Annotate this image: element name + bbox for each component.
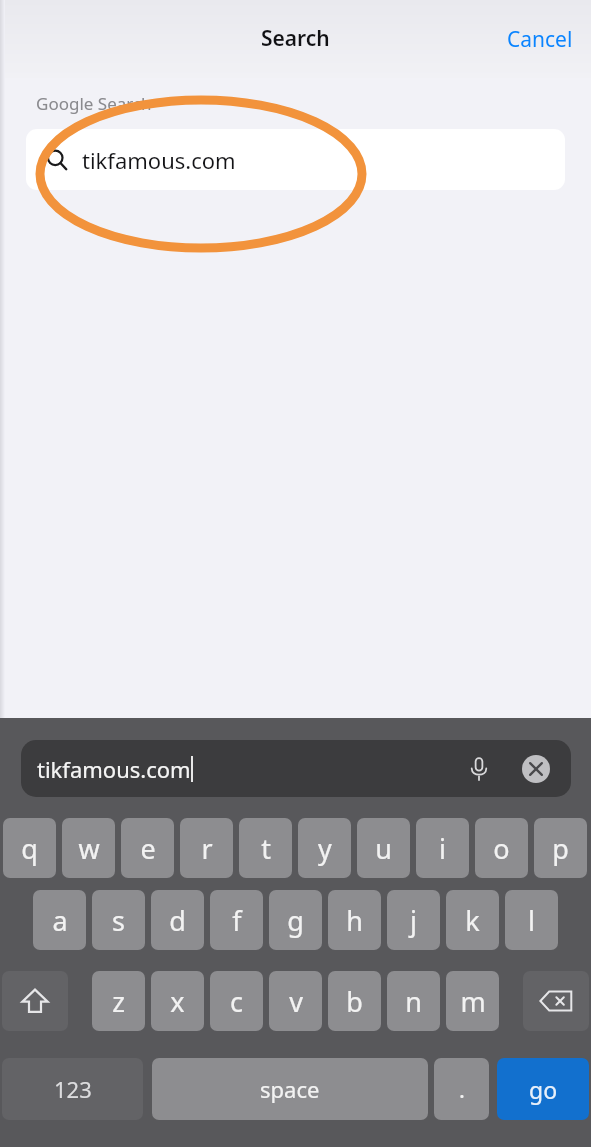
staticText: d [169, 902, 186, 939]
staticText: 123 [54, 1074, 92, 1104]
button[interactable]: Clear text [519, 752, 553, 786]
staticText: v [289, 983, 303, 1020]
staticText: n [405, 983, 422, 1020]
button[interactable]: Shift [2, 971, 68, 1031]
staticText: j [410, 902, 417, 939]
staticText: tikfamous.com [37, 754, 191, 784]
staticText: Search [261, 24, 330, 53]
button[interactable]: go [497, 1058, 589, 1120]
staticText: y [318, 830, 332, 867]
button[interactable]: m [446, 971, 499, 1031]
button[interactable]: o [475, 818, 528, 878]
staticText: l [528, 902, 535, 939]
staticText: w [78, 830, 100, 867]
staticText: z [112, 983, 125, 1020]
staticText: u [375, 830, 392, 867]
button[interactable]: l [505, 890, 558, 950]
staticText: g [287, 902, 304, 939]
button[interactable]: tikfamous.com [26, 129, 565, 190]
button[interactable]: d [151, 890, 204, 950]
button[interactable]: q [3, 818, 56, 878]
staticText: m [460, 983, 486, 1020]
staticText: h [346, 902, 363, 939]
button[interactable]: y [298, 818, 351, 878]
staticText: tikfamous.com [82, 145, 236, 175]
staticText: s [112, 902, 125, 939]
button[interactable]: v [269, 971, 322, 1031]
staticText: r [201, 830, 213, 867]
staticText: t [261, 830, 271, 867]
button[interactable]: i [416, 818, 469, 878]
button[interactable]: h [328, 890, 381, 950]
button[interactable]: k [446, 890, 499, 950]
staticText: k [465, 902, 480, 939]
button[interactable]: e [121, 818, 174, 878]
button[interactable]: w [62, 818, 115, 878]
staticText: Cancel [507, 25, 573, 54]
staticText: x [170, 983, 185, 1020]
button[interactable]: g [269, 890, 322, 950]
staticText: Google Search [36, 92, 152, 115]
button[interactable]: s [92, 890, 145, 950]
staticText: go [529, 1074, 558, 1105]
button[interactable]: Cancel [489, 13, 591, 66]
staticText: p [552, 830, 569, 867]
button[interactable]: n [387, 971, 440, 1031]
button[interactable]: j [387, 890, 440, 950]
button[interactable]: Backspace [523, 971, 589, 1031]
staticText: space [260, 1074, 320, 1104]
button[interactable]: f [210, 890, 263, 950]
button[interactable]: b [328, 971, 381, 1031]
staticText: e [140, 830, 156, 867]
button[interactable]: space [152, 1058, 428, 1120]
button[interactable]: t [239, 818, 292, 878]
button[interactable]: c [210, 971, 263, 1031]
staticText: o [493, 830, 510, 867]
button[interactable]: Voice input [459, 749, 499, 789]
staticText: f [232, 902, 242, 939]
button[interactable]: p [534, 818, 587, 878]
button[interactable]: a [33, 890, 86, 950]
button[interactable]: r [180, 818, 233, 878]
staticText: a [52, 902, 68, 939]
staticText: . [459, 1074, 465, 1104]
button[interactable]: z [92, 971, 145, 1031]
button[interactable]: 123 [2, 1058, 143, 1120]
staticText: q [21, 830, 38, 867]
button[interactable]: u [357, 818, 410, 878]
staticText: i [439, 830, 446, 867]
button[interactable]: x [151, 971, 204, 1031]
button[interactable]: tikfamous.com [21, 740, 571, 797]
button[interactable]: . [434, 1058, 489, 1120]
staticText: c [230, 983, 243, 1020]
staticText: b [346, 983, 363, 1020]
